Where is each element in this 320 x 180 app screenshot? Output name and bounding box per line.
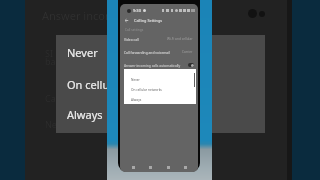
staticText: On cellular networks (67, 77, 174, 92)
button[interactable]: On cellular networks (124, 86, 196, 94)
staticText: Wi-Fi and cellular (167, 37, 193, 41)
button[interactable]: Nav 0 (129, 163, 137, 171)
staticText: 9:30 (133, 8, 141, 13)
staticText: Calling Settings (134, 18, 163, 23)
button[interactable]: Never (124, 76, 196, 84)
staticText: Carrier (182, 50, 193, 54)
button[interactable]: Video call (120, 33, 198, 44)
staticText: Answer incoming call (42, 8, 152, 23)
button[interactable]: Answer incoming calls automatically (120, 59, 198, 70)
button[interactable]: Nav 2 (164, 163, 172, 171)
staticText: Video call (124, 37, 139, 41)
staticText: Always (67, 107, 103, 122)
button[interactable]: Always (124, 96, 196, 104)
staticText: Never (67, 45, 98, 60)
staticText: Answer incoming calls automatically (124, 63, 181, 67)
button[interactable]: Back (120, 16, 198, 25)
staticText: Always (131, 98, 142, 102)
button[interactable]: Call forwarding and voicemail (120, 46, 198, 57)
button[interactable]: Nav 3 (181, 163, 189, 171)
staticText: Ne (45, 118, 57, 130)
staticText: Call forwarding and voicemail (124, 50, 170, 54)
staticText: On cellular networks (131, 88, 162, 92)
staticText: Call settings (125, 28, 144, 32)
other: Back (124, 18, 129, 23)
button[interactable]: Nav 1 (146, 163, 154, 171)
staticText: Never (131, 78, 140, 82)
